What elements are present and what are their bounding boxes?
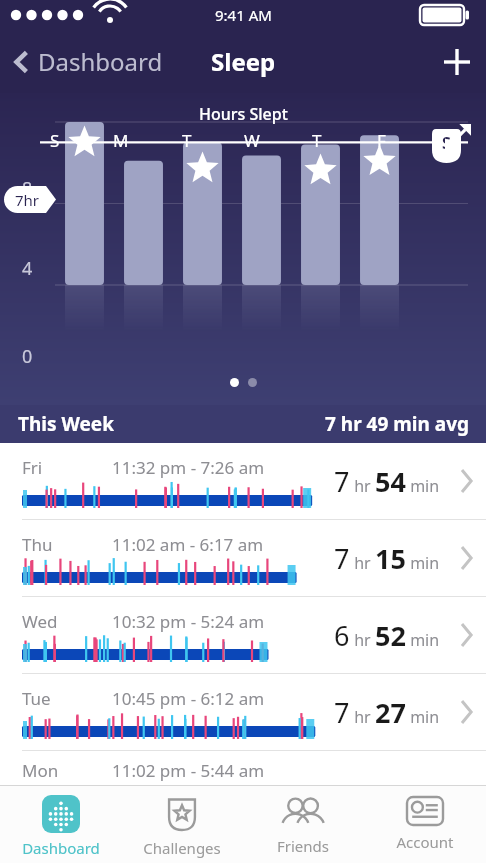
staticText: 7: [334, 694, 350, 731]
staticText: 10:32 pm - 5:24 am: [112, 610, 265, 633]
button[interactable]: Add sleep log: [428, 33, 486, 91]
staticText: Dashboard: [38, 45, 163, 78]
staticText: 7hr: [15, 190, 40, 210]
staticText: Friends: [277, 836, 329, 856]
button[interactable]: Friends: [242, 786, 364, 863]
staticText: min: [406, 629, 440, 651]
staticText: Dashboard: [22, 838, 100, 858]
staticText: min: [406, 552, 440, 574]
staticText: min: [406, 475, 440, 497]
button[interactable]: Challenges: [121, 786, 242, 863]
staticText: Hours Slept: [199, 103, 288, 125]
staticText: hr: [350, 629, 375, 651]
staticText: 54: [375, 463, 406, 500]
staticText: 11:32 pm - 7:26 am: [112, 456, 265, 479]
staticText: 9:41 AM: [215, 5, 272, 25]
staticText: 10:45 pm - 6:12 am: [112, 687, 265, 710]
staticText: 0: [22, 344, 33, 369]
staticText: T: [312, 129, 322, 152]
staticText: W: [244, 129, 260, 152]
button[interactable]: Dashboard: [0, 786, 121, 863]
staticText: Tue: [22, 687, 112, 710]
button[interactable]: Thu: [0, 520, 486, 596]
staticText: 7: [334, 540, 350, 577]
staticText: 4: [22, 256, 33, 281]
button[interactable]: Expand chart: [438, 117, 478, 157]
staticText: 11:02 am - 6:17 am: [112, 533, 264, 556]
button[interactable]: Dashboard: [0, 45, 171, 78]
staticText: Mon: [22, 759, 112, 782]
button[interactable]: Account: [364, 786, 486, 863]
staticText: F: [377, 129, 386, 152]
staticText: 11:02 pm - 5:44 am: [112, 759, 265, 782]
staticText: min: [406, 706, 440, 728]
staticText: T: [182, 129, 192, 152]
staticText: Sleep: [211, 45, 276, 78]
staticText: 15: [375, 540, 406, 577]
button[interactable]: Mon: [0, 751, 486, 791]
staticText: hr: [350, 706, 375, 728]
staticText: Thu: [22, 533, 112, 556]
staticText: 7: [334, 463, 350, 500]
staticText: M: [113, 129, 129, 152]
staticText: Wed: [22, 610, 112, 633]
staticText: 7 hr 49 min avg: [325, 411, 470, 437]
staticText: Account: [396, 832, 454, 852]
staticText: Fri: [22, 456, 112, 479]
staticText: Challenges: [143, 838, 221, 858]
staticText: 6: [334, 617, 350, 654]
staticText: 27: [375, 694, 406, 731]
staticText: 52: [375, 617, 406, 654]
staticText: S: [50, 129, 60, 152]
staticText: S: [442, 132, 451, 154]
staticText: hr: [350, 475, 375, 497]
staticText: This Week: [18, 411, 114, 437]
button[interactable]: Tue: [0, 674, 486, 750]
button[interactable]: Fri: [0, 443, 486, 519]
button[interactable]: Wed: [0, 597, 486, 673]
staticText: hr: [350, 552, 375, 574]
staticText: 8: [22, 176, 33, 201]
